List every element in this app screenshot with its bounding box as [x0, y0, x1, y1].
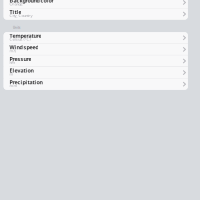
button[interactable]: Elevation	[4, 67, 188, 78]
button[interactable]: Wind speed	[4, 44, 188, 55]
staticText: Pressure	[9, 55, 31, 62]
staticText: Orange	[9, 1, 22, 6]
staticText: Title	[9, 8, 21, 16]
staticText: Celsius (°C)	[9, 36, 30, 42]
button[interactable]: Precipitation	[4, 79, 188, 90]
button[interactable]: Temperature	[4, 32, 188, 43]
staticText: Elevation	[9, 67, 33, 74]
staticText: m	[9, 71, 13, 77]
staticText: Wind speed	[9, 44, 38, 51]
staticText: m/s	[9, 48, 16, 53]
button[interactable]: Background color	[4, 0, 188, 8]
button[interactable]: Pressure	[4, 55, 188, 66]
staticText: Precipitation	[9, 78, 42, 86]
button[interactable]: Title	[4, 8, 188, 20]
staticText: Background color	[9, 0, 53, 4]
staticText: Units	[13, 26, 20, 30]
staticText: hPa	[9, 60, 15, 65]
staticText: Temperature	[9, 32, 41, 39]
staticText: mm	[9, 83, 17, 88]
staticText: City, Country	[9, 13, 32, 18]
